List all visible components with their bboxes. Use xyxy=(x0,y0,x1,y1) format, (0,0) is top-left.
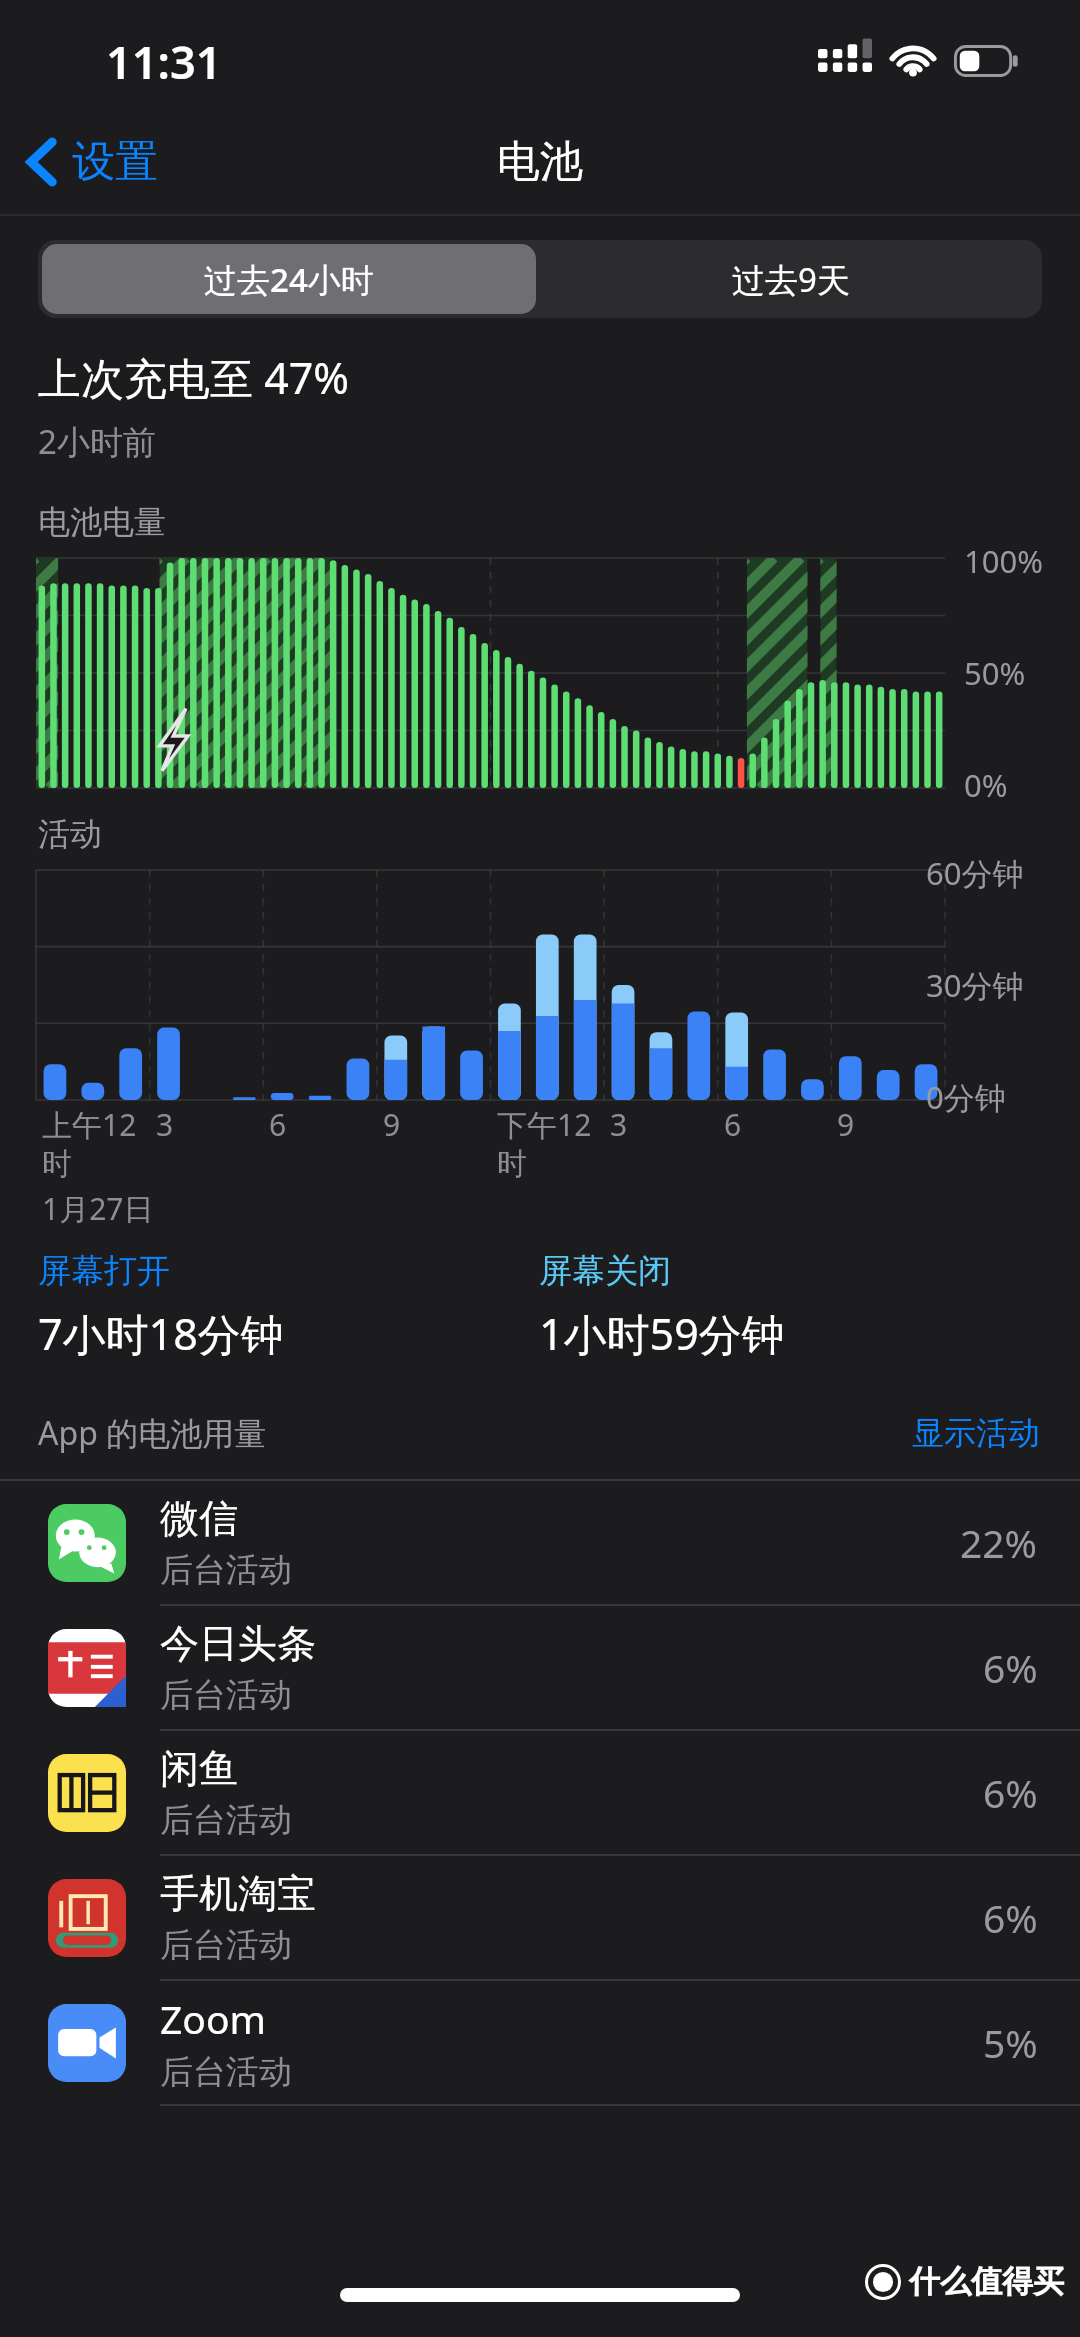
staticText: 3 xyxy=(610,1104,628,1145)
staticText: 0% xyxy=(964,764,1008,806)
staticText: 6% xyxy=(983,1891,1038,1944)
staticText: 30分钟 xyxy=(926,964,1024,1006)
staticText: 9 xyxy=(837,1104,855,1145)
staticText: 6 xyxy=(269,1104,287,1145)
staticText: 什么值得买 xyxy=(909,2262,1064,2301)
staticText: 6 xyxy=(724,1104,742,1145)
staticText: 3 xyxy=(156,1104,174,1145)
button[interactable]: 手机淘宝 xyxy=(0,1856,1080,1979)
button[interactable]: 显示活动 xyxy=(906,1407,1046,1459)
staticText: 100% xyxy=(964,540,1043,582)
button[interactable]: 过去24小时 xyxy=(42,244,536,314)
staticText: 50% xyxy=(964,652,1026,694)
staticText: 后台活动 xyxy=(160,1924,292,1966)
staticText: 0分钟 xyxy=(926,1076,1006,1118)
staticText: App 的电池用量 xyxy=(38,1411,906,1455)
button[interactable]: 设置 xyxy=(0,125,176,199)
staticText: 60分钟 xyxy=(926,852,1024,894)
staticText: 2小时前 xyxy=(38,419,156,464)
button[interactable]: 过去9天 xyxy=(540,240,1042,318)
staticText: 过去9天 xyxy=(732,257,850,302)
button[interactable]: 今日头条 xyxy=(0,1606,1080,1729)
staticText: 7小时18分钟 xyxy=(38,1304,284,1363)
staticText: 显示活动 xyxy=(912,1413,1040,1453)
staticText: 电池 xyxy=(497,135,583,189)
staticText: 6% xyxy=(983,1766,1038,1819)
staticText: 上午12 时 xyxy=(42,1104,137,1183)
staticText: Zoom xyxy=(160,1992,266,2045)
staticText: 后台活动 xyxy=(160,2051,292,2093)
staticText: 过去24小时 xyxy=(204,257,374,302)
button[interactable]: 微信 xyxy=(0,1481,1080,1604)
staticText: 11:31 xyxy=(106,31,222,92)
staticText: 1月27日 xyxy=(42,1188,154,1229)
staticText: 手机淘宝 xyxy=(160,1869,316,1918)
staticText: 上次充电至 47% xyxy=(38,348,350,407)
staticText: 微信 xyxy=(160,1494,238,1543)
staticText: 后台活动 xyxy=(160,1674,292,1716)
button[interactable]: Zoom xyxy=(0,1981,1080,2104)
staticText: 后台活动 xyxy=(160,1549,292,1591)
staticText: 闲鱼 xyxy=(160,1744,238,1793)
staticText: 9 xyxy=(383,1104,401,1145)
staticText: 6% xyxy=(983,1641,1038,1694)
staticText: 活动 xyxy=(38,814,102,854)
staticText: 今日头条 xyxy=(160,1619,316,1668)
button[interactable]: 闲鱼 xyxy=(0,1731,1080,1854)
staticText: 后台活动 xyxy=(160,1799,292,1841)
staticText: 设置 xyxy=(72,135,158,189)
staticText: 5% xyxy=(983,2016,1038,2069)
staticText: 1小时59分钟 xyxy=(539,1304,785,1363)
staticText: 屏幕打开 xyxy=(38,1250,170,1292)
staticText: 屏幕关闭 xyxy=(539,1250,671,1292)
staticText: 电池电量 xyxy=(38,502,166,542)
staticText: 22% xyxy=(960,1516,1038,1569)
staticText: 下午12 时 xyxy=(497,1104,592,1183)
